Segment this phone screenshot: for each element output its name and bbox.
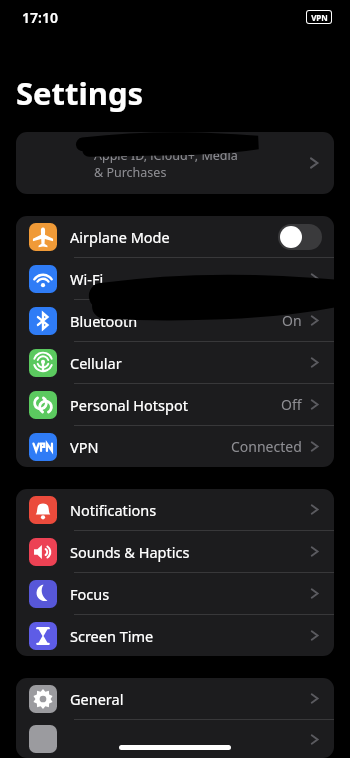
- staticText: Settings: [16, 72, 144, 114]
- button[interactable]: Notifications: [16, 489, 334, 530]
- button[interactable]: Focus: [16, 573, 334, 614]
- staticText: Apple ID, iCloud+, Media & Purchases: [94, 147, 238, 180]
- button[interactable]: Apple ID, iCloud+, Media & Purchases: [16, 132, 334, 194]
- staticText: Bluetooth: [70, 311, 138, 331]
- staticText: Airplane Mode: [70, 227, 170, 247]
- staticText: On: [282, 311, 302, 330]
- staticText: Notifications: [70, 500, 157, 520]
- staticText: VPN: [311, 12, 328, 23]
- staticText: VPN: [70, 437, 99, 457]
- button[interactable]: Personal Hotspot: [16, 384, 334, 425]
- staticText: 17:10: [22, 8, 58, 27]
- staticText: Screen Time: [70, 626, 154, 646]
- staticText: Cellular: [70, 353, 122, 373]
- staticText: Personal Hotspot: [70, 395, 188, 415]
- button[interactable]: Wi-Fi: [16, 258, 334, 299]
- button[interactable]: [16, 720, 334, 758]
- button[interactable]: Airplane Mode toggle: [278, 224, 322, 250]
- button[interactable]: Airplane Mode: [16, 216, 334, 257]
- staticText: Wi-Fi: [70, 269, 104, 289]
- button[interactable]: VPN: [16, 426, 334, 467]
- button[interactable]: Sounds & Haptics: [16, 531, 334, 572]
- button[interactable]: Bluetooth: [16, 300, 334, 341]
- button[interactable]: Cellular: [16, 342, 334, 383]
- staticText: General: [70, 689, 124, 709]
- staticText: Focus: [70, 584, 110, 604]
- staticText: Off: [281, 395, 302, 414]
- staticText: Connected: [231, 437, 302, 456]
- staticText: Sounds & Haptics: [70, 542, 190, 562]
- button[interactable]: Screen Time: [16, 615, 334, 656]
- button[interactable]: General: [16, 678, 334, 719]
